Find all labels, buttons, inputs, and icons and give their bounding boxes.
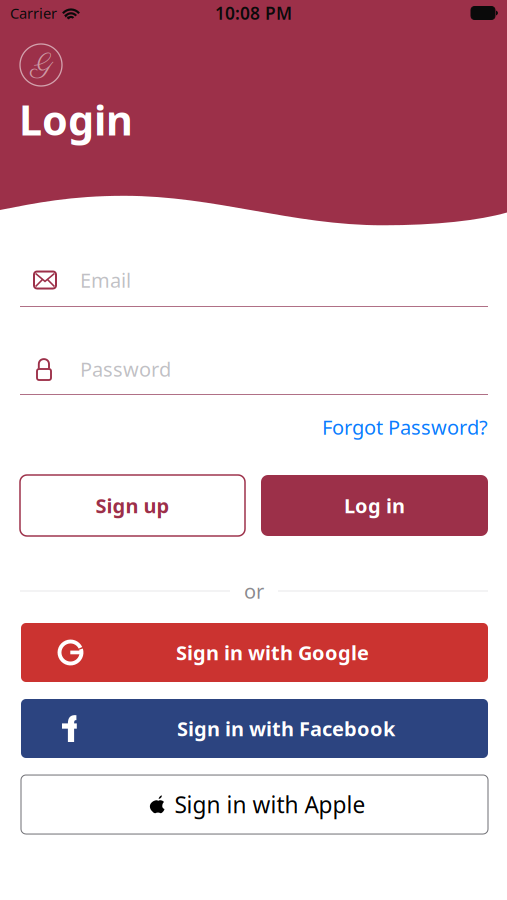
- staticText: Sign up: [95, 492, 169, 519]
- staticText: or: [244, 578, 264, 604]
- staticText: Sign in with Facebook: [177, 715, 395, 742]
- staticText: Log in: [344, 492, 405, 519]
- staticText: G: [32, 47, 52, 85]
- staticText: Sign in with Google: [176, 639, 369, 666]
- staticText: Sign in with Apple: [174, 789, 365, 819]
- button[interactable]: Sign in with Facebook: [21, 699, 488, 758]
- button[interactable]: Sign in with Apple: [21, 775, 488, 834]
- staticText: 10:08 PM: [215, 1, 292, 24]
- button[interactable]: Sign in with Google: [21, 623, 488, 682]
- staticText: Carrier: [10, 3, 57, 23]
- staticText: Forgot Password?: [322, 414, 488, 440]
- button[interactable]: Forgot Password?: [20, 412, 488, 442]
- staticText: Login: [19, 92, 133, 147]
- button[interactable]: Sign up: [20, 475, 245, 536]
- staticText: Email: [80, 267, 131, 293]
- button[interactable]: Log in: [261, 475, 488, 536]
- staticText: Password: [80, 356, 171, 382]
